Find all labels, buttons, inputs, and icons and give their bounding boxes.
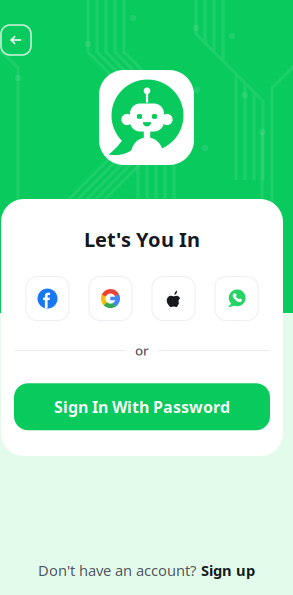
- button[interactable]: Don't have an account?: [32, 556, 261, 584]
- button[interactable]: Continue with WhatsApp: [215, 277, 258, 321]
- staticText: Sign In With Password: [54, 396, 230, 417]
- staticText: Don't have an account?: [38, 560, 196, 580]
- staticText: Let's You In: [84, 226, 200, 253]
- button[interactable]: Back: [1, 25, 31, 55]
- button[interactable]: Continue with Facebook: [26, 277, 69, 321]
- button[interactable]: Sign In With Password: [14, 383, 270, 430]
- button[interactable]: Continue with Google: [89, 277, 132, 321]
- button[interactable]: Continue with Apple: [152, 277, 195, 321]
- staticText: or: [135, 342, 149, 359]
- staticText: Sign up: [201, 560, 255, 580]
